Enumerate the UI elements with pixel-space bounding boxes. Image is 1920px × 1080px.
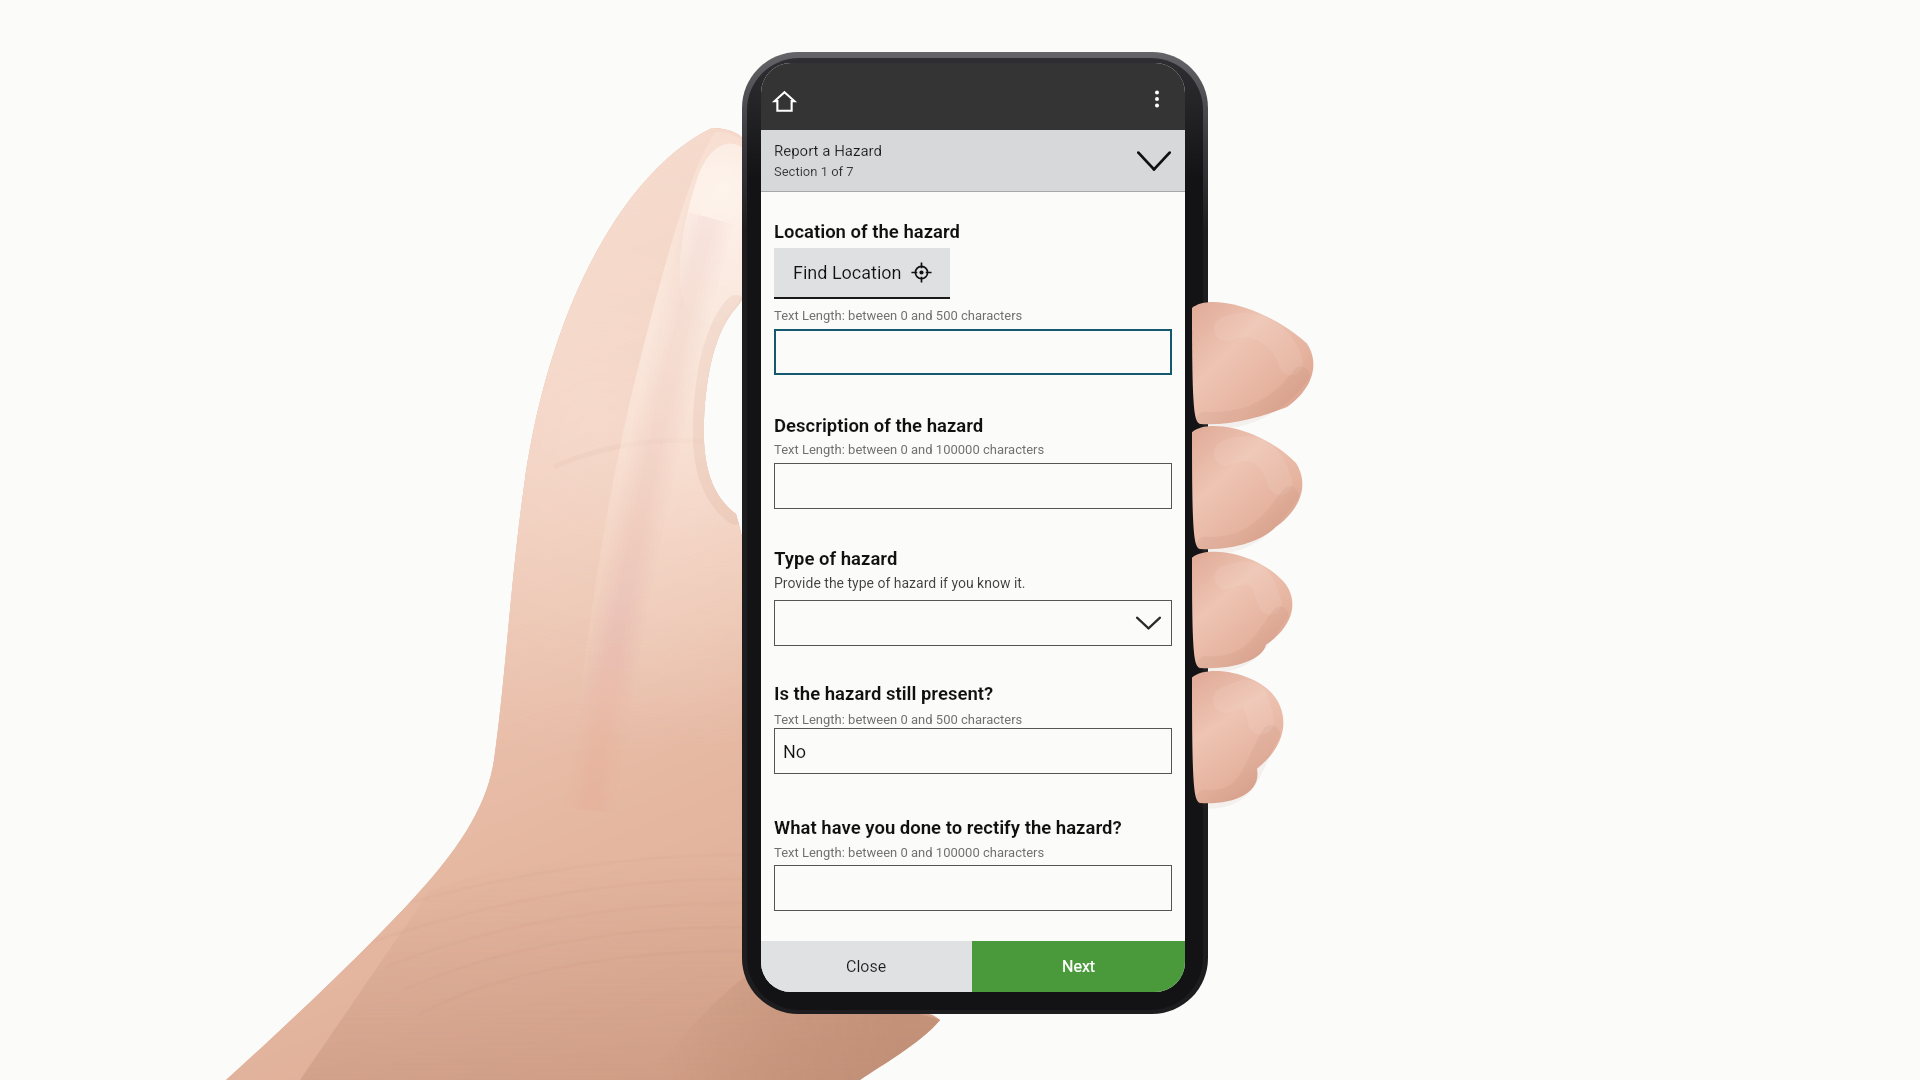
staticText: Text Length: between 0 and 500 character… <box>774 712 1023 727</box>
button[interactable] <box>774 865 1172 911</box>
button[interactable]: Report a Hazard <box>761 130 1185 191</box>
staticText: Type of hazard <box>774 548 898 570</box>
button[interactable]: Find Location <box>774 248 950 297</box>
staticText: Provide the type of hazard if you know i… <box>774 575 1026 591</box>
button[interactable]: Next <box>972 941 1185 992</box>
button[interactable] <box>774 600 1172 646</box>
button[interactable] <box>774 463 1172 509</box>
staticText: No <box>783 741 807 762</box>
button[interactable] <box>774 329 1172 375</box>
staticText: Location of the hazard <box>774 221 961 243</box>
staticText: Description of the hazard <box>774 415 984 437</box>
button[interactable]: Close <box>761 941 972 992</box>
staticText: Report a Hazard <box>774 142 882 160</box>
button[interactable]: Home <box>773 90 796 113</box>
staticText: Close <box>846 957 887 976</box>
button[interactable]: No <box>774 728 1172 774</box>
staticText: Is the hazard still present? <box>774 683 994 705</box>
staticText: Find Location <box>793 262 902 283</box>
staticText: Text Length: between 0 and 100000 charac… <box>774 442 1045 457</box>
staticText: Text Length: between 0 and 100000 charac… <box>774 845 1045 860</box>
staticText: Text Length: between 0 and 500 character… <box>774 308 1023 323</box>
staticText: Section 1 of 7 <box>774 164 854 179</box>
staticText: What have you done to rectify the hazard… <box>774 817 1122 839</box>
button[interactable]: More options <box>1147 89 1167 109</box>
staticText: Next <box>1062 957 1096 976</box>
